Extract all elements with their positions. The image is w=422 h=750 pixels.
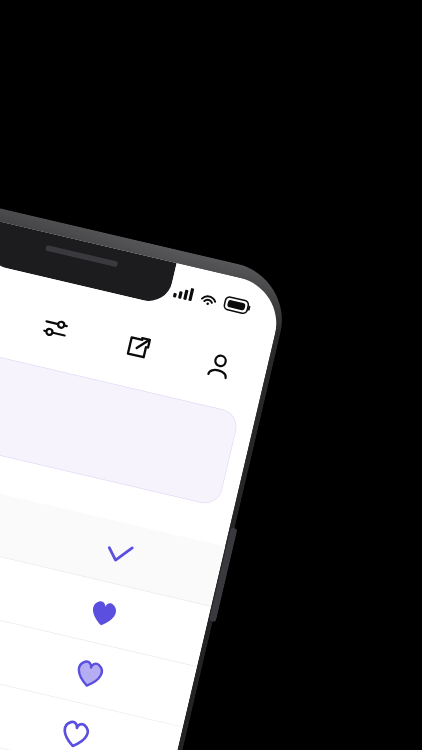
button[interactable] [0, 454, 225, 607]
button[interactable] [0, 575, 197, 728]
button[interactable] [0, 635, 183, 750]
button[interactable]: Filters [30, 303, 81, 353]
button[interactable]: Beat [0, 696, 169, 750]
button[interactable]: Share [112, 322, 163, 372]
button[interactable] [0, 515, 211, 667]
button[interactable]: Profile [194, 341, 244, 392]
button[interactable]: Pick a session [0, 328, 240, 507]
